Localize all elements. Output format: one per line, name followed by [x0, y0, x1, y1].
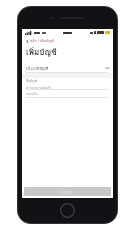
staticText: เพิ่มบัญชี [26, 46, 57, 59]
button[interactable]: ยอดเงิน [22, 90, 113, 98]
staticText: บันทึก [62, 189, 73, 195]
staticText: ยอดเงิน [26, 91, 39, 97]
other: Expand account type [106, 67, 109, 69]
staticText: ชื่อบัญชี [26, 78, 37, 83]
button[interactable]: ประเภทบัญชี [22, 62, 113, 73]
other: Back [26, 40, 29, 43]
button[interactable]: Back [26, 38, 54, 44]
button[interactable]: ชื่อบัญชี [22, 78, 113, 90]
staticText: หลัก / เพิ่มบัญชี [30, 38, 54, 44]
staticText: คำบรรยายบัญชี [26, 85, 51, 90]
staticText: ประเภทบัญชี [26, 65, 49, 71]
